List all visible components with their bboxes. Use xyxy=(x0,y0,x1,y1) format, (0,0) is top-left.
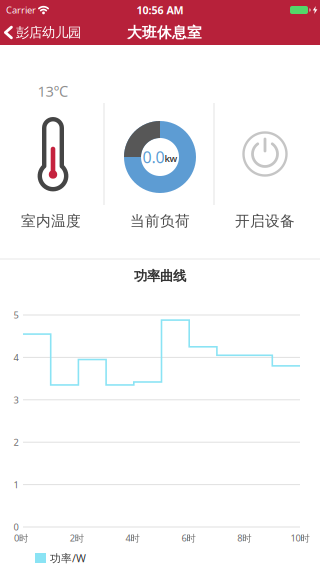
button[interactable]: 开启设备 xyxy=(242,131,288,177)
staticText: 0时 xyxy=(14,532,28,544)
staticText: 6时 xyxy=(181,532,195,544)
staticText: 4 xyxy=(13,351,18,364)
staticText: 10时 xyxy=(290,532,309,544)
staticText: 0 xyxy=(13,521,18,533)
staticText: 功率/W xyxy=(50,551,86,565)
staticText: 0.0 xyxy=(142,146,164,168)
staticText: 2时 xyxy=(70,532,84,544)
staticText: 大班休息室 xyxy=(127,23,202,41)
staticText: 10:56 AM xyxy=(136,3,183,17)
button[interactable]: 彭店幼儿园 xyxy=(0,24,81,41)
staticText: 8时 xyxy=(237,532,251,544)
staticText: Carrier xyxy=(6,4,36,16)
staticText: 2 xyxy=(13,436,18,448)
staticText: 5 xyxy=(13,309,18,321)
staticText: 功率曲线 xyxy=(134,268,186,284)
staticText: 开启设备 xyxy=(235,212,295,230)
staticText: kw xyxy=(164,152,177,165)
staticText: 室内温度 xyxy=(21,212,81,230)
staticText: 13℃ xyxy=(37,81,68,101)
staticText: 1 xyxy=(13,478,18,491)
staticText: 3 xyxy=(13,394,18,406)
staticText: 彭店幼儿园 xyxy=(16,24,81,41)
staticText: 4时 xyxy=(126,532,140,544)
staticText: 当前负荷 xyxy=(130,212,190,230)
